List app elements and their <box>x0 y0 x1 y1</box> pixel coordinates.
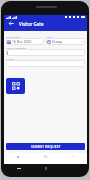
button[interactable] <box>6 49 85 56</box>
staticText: 16 Dec 2020 <box>12 39 32 44</box>
button[interactable]: Group <box>46 38 85 45</box>
staticText: PLATE NUMBER <box>6 46 26 49</box>
staticText: Group <box>52 39 63 44</box>
button[interactable]: Recents <box>4 153 31 164</box>
button[interactable]: 16 Dec 2020 <box>6 38 44 45</box>
staticText: SUBMIT REQUEST <box>31 145 61 149</box>
button[interactable]: Home <box>31 153 59 164</box>
button[interactable] <box>6 60 85 67</box>
button[interactable]: Back <box>4 19 19 28</box>
button[interactable]: Scan QR code <box>6 78 25 94</box>
button[interactable]: SUBMIT REQUEST <box>6 143 85 150</box>
staticText: TYPE <box>46 35 53 38</box>
staticText: VISIT DATE <box>6 35 20 38</box>
staticText: Visitor Gate <box>19 21 44 27</box>
staticText: NAME <box>6 57 14 60</box>
